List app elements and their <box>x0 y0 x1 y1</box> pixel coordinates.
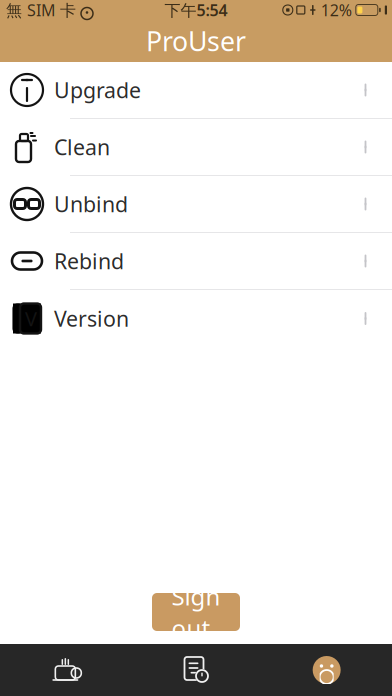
staticText: Clean <box>54 133 110 161</box>
button[interactable]: Profile <box>261 644 392 696</box>
staticText: V <box>25 305 37 332</box>
staticText: Sign out <box>171 580 220 644</box>
staticText: Rebind <box>54 247 124 275</box>
button[interactable]: Records <box>131 644 261 696</box>
staticText: Upgrade <box>54 76 141 104</box>
button[interactable]: Sign out <box>152 593 240 631</box>
staticText: 下午5:54 <box>164 0 227 21</box>
staticText: Unbind <box>54 190 128 218</box>
button[interactable]: Unbind <box>0 176 392 233</box>
button[interactable]: Coffee <box>0 644 131 696</box>
button[interactable]: Rebind <box>0 233 392 290</box>
button[interactable]: Clean <box>0 119 392 176</box>
button[interactable]: V <box>0 290 392 347</box>
staticText: 12% <box>321 0 352 21</box>
staticText: ProUser <box>146 23 246 59</box>
staticText: 無 SIM 卡 <box>6 0 76 21</box>
button[interactable]: Upgrade <box>0 62 392 119</box>
staticText: Version <box>54 304 129 333</box>
